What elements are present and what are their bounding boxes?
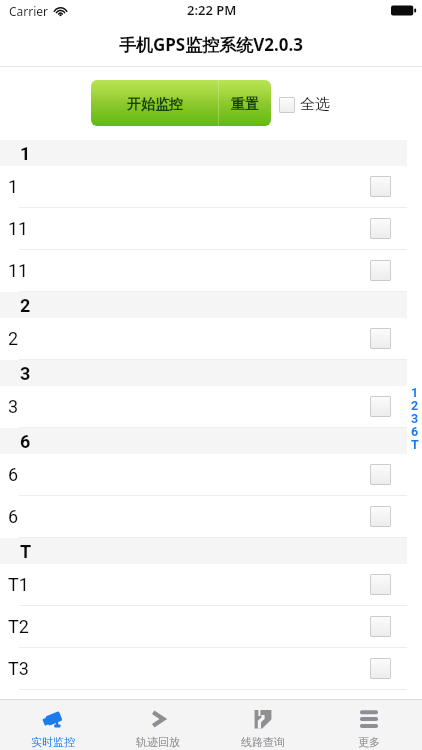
staticText: 2 [8,328,19,349]
staticText: 6 [8,464,19,485]
button[interactable]: 6 [0,496,407,538]
staticText: 3 [20,363,31,384]
button[interactable]: 重置 [219,80,271,126]
staticText: 线路查询 [241,735,285,749]
staticText: T2 [8,616,29,637]
button[interactable]: T2 [0,606,407,648]
staticText: 11 [8,260,29,281]
staticText: 手机GPS监控系统V2.0.3 [119,33,304,56]
staticText: 重置 [231,96,259,114]
staticText: 开始监控 [127,96,183,114]
staticText: 6 [411,424,419,437]
staticText: 轨迹回放 [136,735,180,749]
staticText: T [411,437,419,450]
staticText: 3 [411,411,419,424]
button[interactable]: 更多 [316,700,422,750]
staticText: 实时监控 [31,735,75,749]
staticText: 11 [8,218,29,239]
button[interactable]: 全选 [279,95,330,114]
staticText: 全选 [300,95,330,114]
button[interactable]: 1 [0,166,407,208]
staticText: 6 [20,431,31,452]
staticText: Carrier [9,3,49,19]
staticText: 1 [411,385,419,398]
button[interactable]: 2 [0,318,407,360]
staticText: 6 [8,506,19,527]
button[interactable]: 6 [0,454,407,496]
staticText: 3 [8,396,19,417]
button[interactable]: 11 [0,250,407,292]
button[interactable]: 实时监控 [0,700,105,750]
button[interactable]: T3 [0,648,407,690]
button[interactable]: T1 [0,564,407,606]
staticText: T1 [8,574,29,595]
button[interactable]: 3 [0,386,407,428]
button[interactable]: 11 [0,208,407,250]
staticText: T [20,541,32,562]
button[interactable]: 开始监控 [91,80,218,126]
button[interactable]: 线路查询 [210,700,316,750]
staticText: 2 [411,398,419,411]
staticText: 2:22 PM [187,1,237,19]
staticText: T3 [8,658,29,679]
staticText: 1 [20,143,31,164]
button[interactable]: 轨迹回放 [105,700,210,750]
staticText: 2 [20,295,31,316]
staticText: 1 [8,176,19,197]
staticText: 更多 [358,735,380,749]
